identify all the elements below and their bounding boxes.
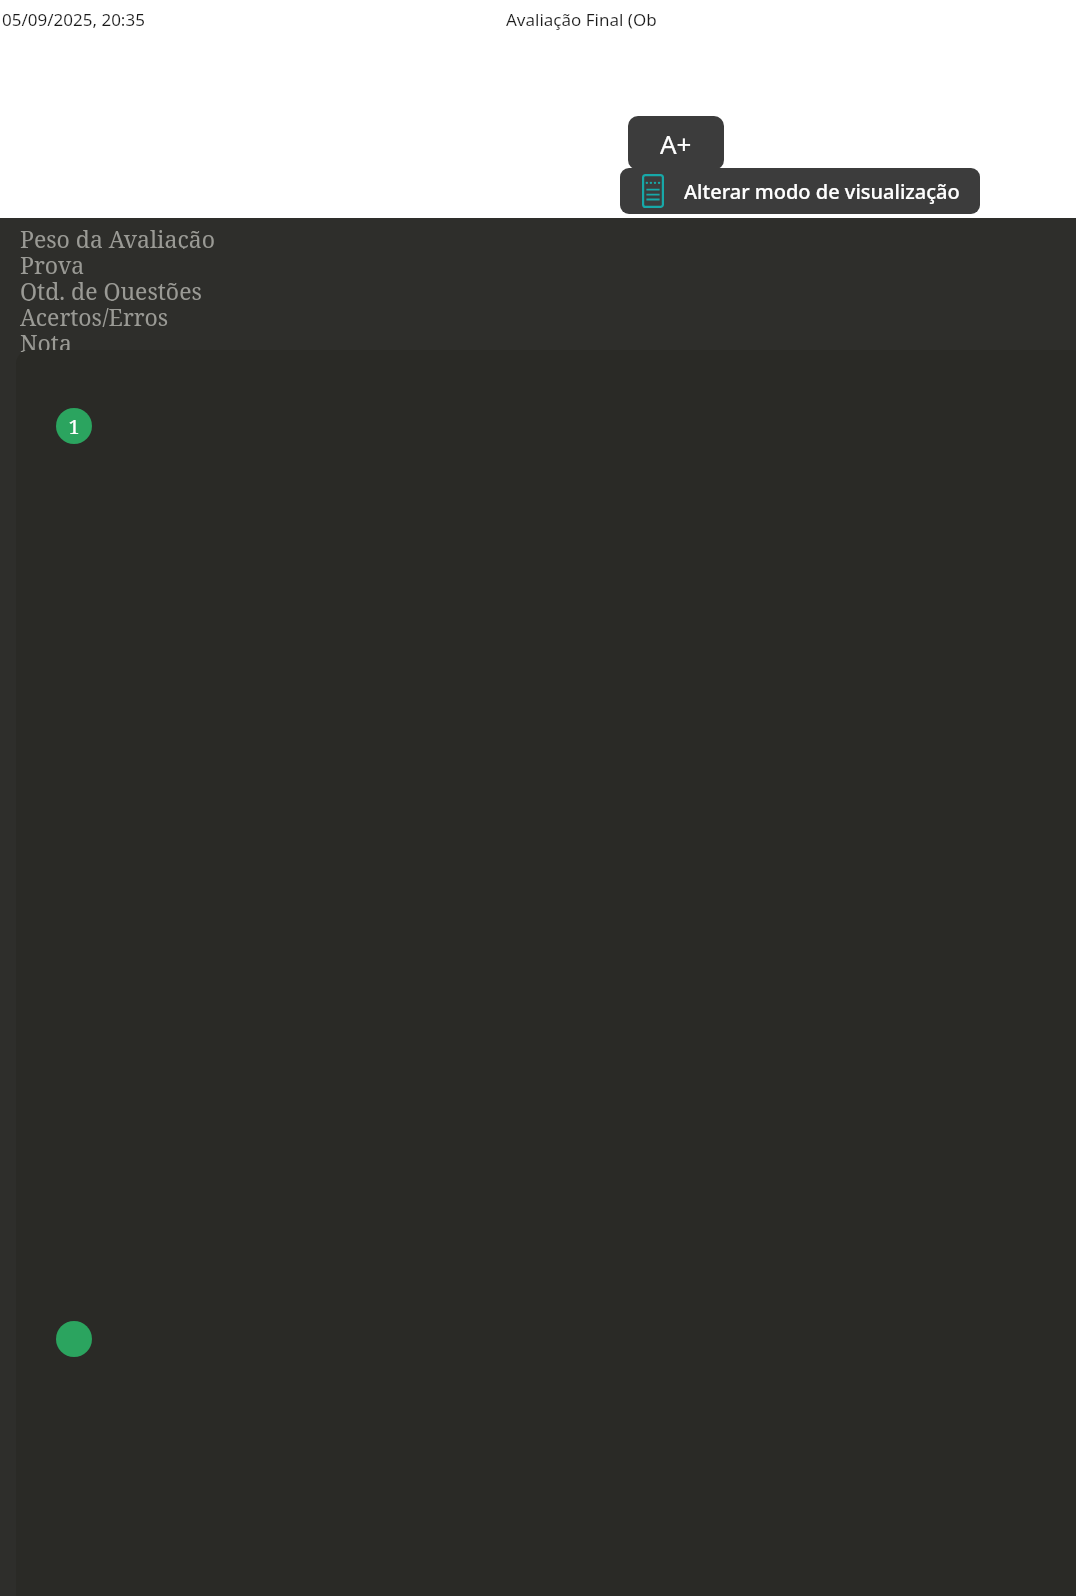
- staticText: 05/09/2025, 20:35: [2, 8, 145, 31]
- staticText: Prova: [20, 249, 85, 275]
- button[interactable]: 1: [56, 408, 92, 444]
- button[interactable]: Status: [56, 1321, 92, 1357]
- staticText: Peso da Avaliação: [20, 223, 215, 249]
- staticText: Acertos/Erros: [20, 301, 169, 327]
- button[interactable]: Alterar modo de visualização: [620, 168, 980, 214]
- staticText: Nota: [20, 327, 72, 353]
- staticText: 1: [68, 413, 80, 440]
- staticText: A+: [660, 126, 692, 161]
- staticText: Alterar modo de visualização: [684, 178, 960, 205]
- button[interactable]: A+: [628, 116, 724, 170]
- staticText: Qtd. de Questões: [20, 275, 202, 301]
- button[interactable]: 1: [16, 350, 1076, 1596]
- staticText: Avaliação Final (Ob: [506, 8, 657, 31]
